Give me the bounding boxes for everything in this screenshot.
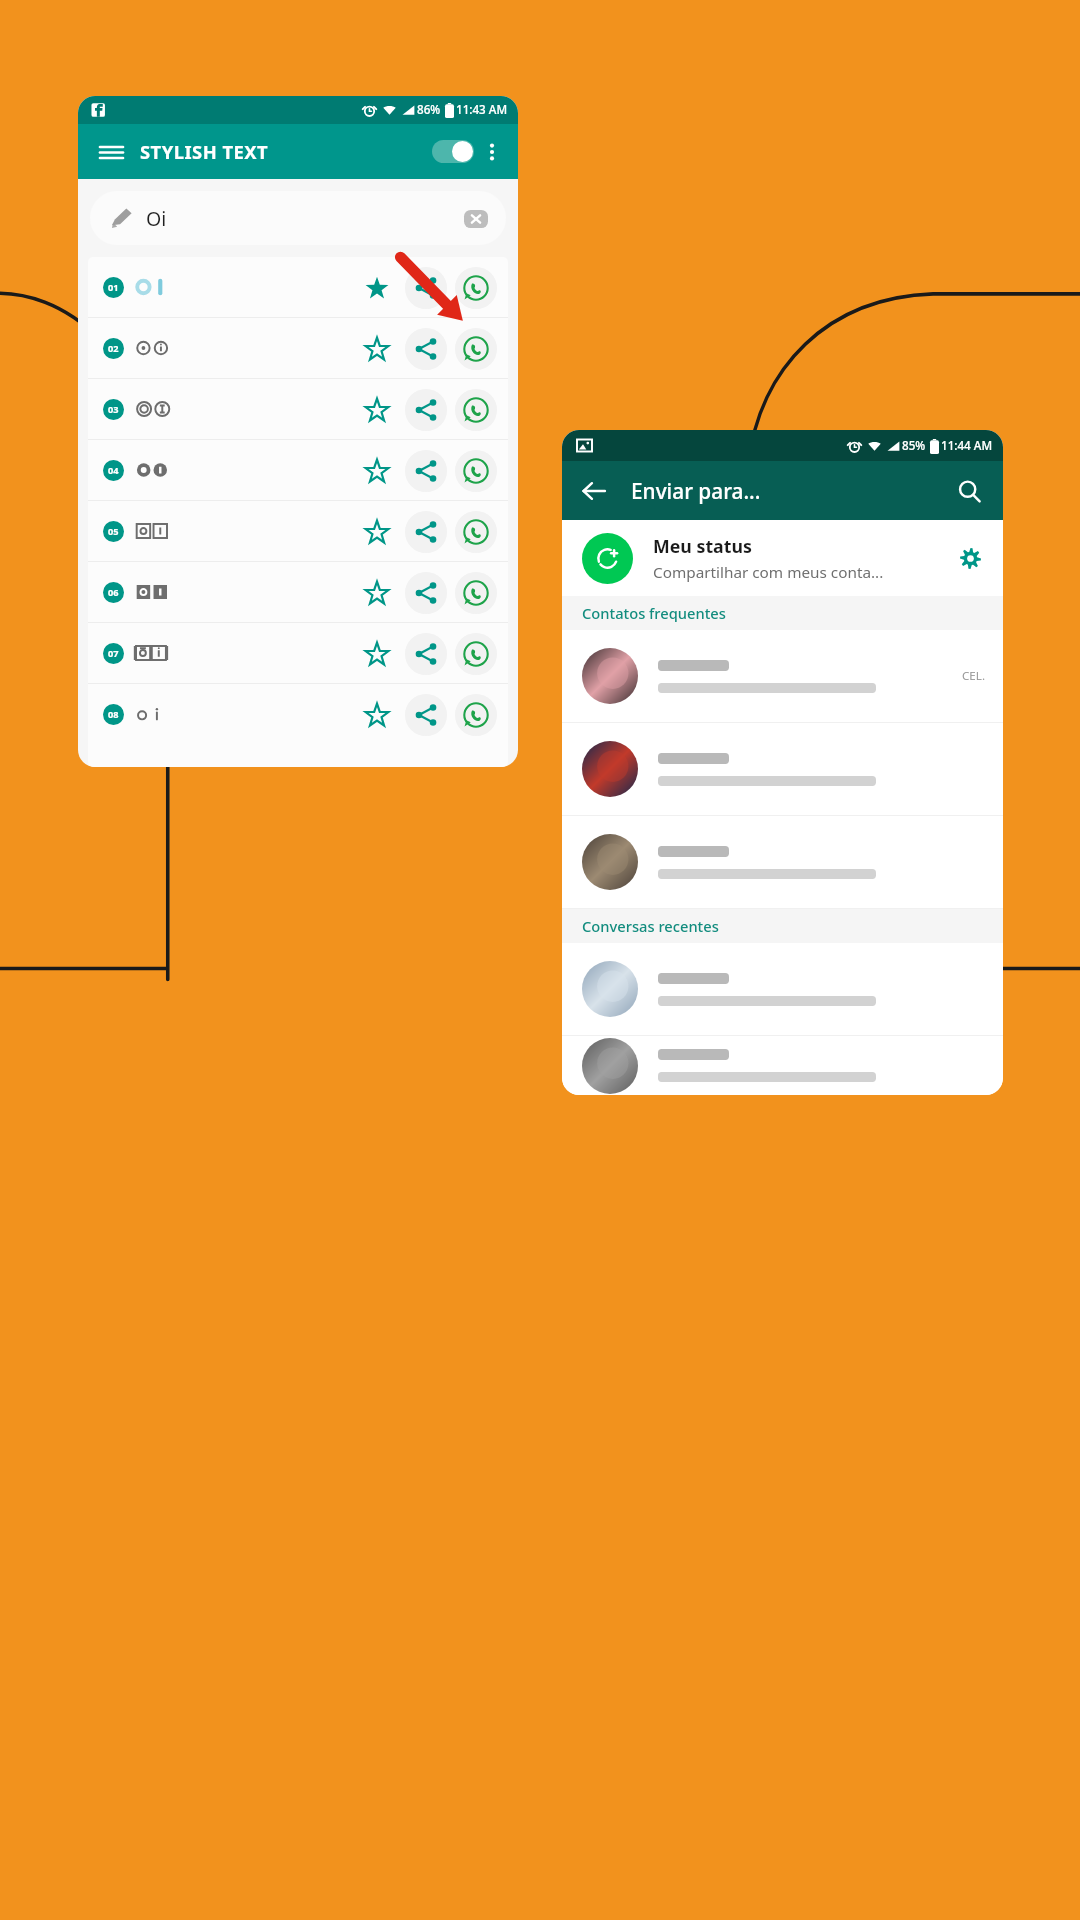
staticText: Oi — [146, 205, 167, 232]
button[interactable]: Favorite — [352, 568, 401, 617]
button[interactable]: 07 — [88, 623, 508, 683]
staticText: Compartilhar com meus conta... — [653, 562, 884, 583]
button[interactable]: Share — [401, 385, 450, 434]
staticText: 03 — [108, 403, 119, 416]
button[interactable]: Status settings — [954, 542, 986, 574]
staticText: 02 — [108, 342, 119, 355]
button[interactable]: Share — [401, 629, 450, 678]
button[interactable]: Send to WhatsApp — [450, 445, 501, 496]
button[interactable]: 03 — [88, 379, 508, 439]
button[interactable]: Send to WhatsApp — [450, 506, 501, 557]
button[interactable]: Share — [401, 263, 450, 312]
staticText: 04 — [108, 464, 119, 477]
staticText: 86% — [417, 102, 441, 118]
button[interactable]: 01 — [88, 257, 508, 317]
button[interactable]: Favorite — [352, 690, 401, 739]
button[interactable]: Clear — [462, 205, 489, 232]
button[interactable]: 06 — [88, 562, 508, 622]
staticText: 05 — [108, 525, 119, 538]
button[interactable]: Send to WhatsApp — [450, 689, 501, 740]
staticText: 06 — [108, 586, 119, 599]
staticText: 85% — [902, 438, 926, 454]
button[interactable]: Favorite — [352, 446, 401, 495]
button[interactable]: More options — [477, 137, 506, 166]
staticText: 01 — [108, 281, 119, 294]
button[interactable]: Send to WhatsApp — [450, 628, 501, 679]
button[interactable]: Send to WhatsApp — [450, 567, 501, 618]
button[interactable]: Share — [401, 690, 450, 739]
button[interactable]: Send to WhatsApp — [450, 262, 501, 313]
button[interactable] — [562, 1036, 1003, 1095]
staticText: 11:44 AM — [941, 438, 993, 454]
button[interactable]: Favorite — [352, 263, 401, 312]
button[interactable] — [562, 816, 1003, 908]
button[interactable] — [562, 723, 1003, 815]
button[interactable] — [562, 943, 1003, 1035]
button[interactable]: Favorite — [352, 629, 401, 678]
button[interactable]: 08 — [88, 684, 508, 744]
button[interactable]: Search — [952, 474, 986, 508]
staticText: 07 — [108, 647, 119, 660]
staticText: Enviar para... — [631, 477, 761, 505]
button[interactable]: Meu status — [562, 520, 1003, 596]
button[interactable]: CEL. — [562, 630, 1003, 722]
button[interactable]: Share — [401, 446, 450, 495]
button[interactable]: Back — [577, 474, 611, 508]
button[interactable]: Send to WhatsApp — [450, 323, 501, 374]
button[interactable]: Share — [401, 324, 450, 373]
button[interactable]: Oi — [90, 191, 506, 245]
button[interactable]: Share — [401, 568, 450, 617]
staticText: 08 — [108, 708, 119, 721]
button[interactable]: Menu — [95, 136, 127, 168]
button[interactable]: Favorite — [352, 507, 401, 556]
staticText: CEL. — [962, 668, 986, 684]
button[interactable]: Favorite — [352, 385, 401, 434]
staticText: Conversas recentes — [582, 916, 719, 936]
button[interactable]: Send to WhatsApp — [450, 384, 501, 435]
button[interactable]: 04 — [88, 440, 508, 500]
staticText: STYLISH TEXT — [140, 139, 269, 164]
button[interactable]: Favorite — [352, 324, 401, 373]
staticText: 11:43 AM — [456, 102, 508, 118]
button[interactable]: 02 — [88, 318, 508, 378]
staticText: Meu status — [653, 534, 752, 558]
button[interactable]: Toggle — [429, 137, 476, 166]
button[interactable]: 05 — [88, 501, 508, 561]
staticText: Contatos frequentes — [582, 603, 726, 623]
button[interactable]: Share — [401, 507, 450, 556]
